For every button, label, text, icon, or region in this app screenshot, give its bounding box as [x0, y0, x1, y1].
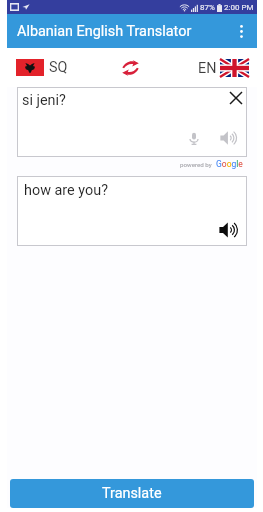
button[interactable]: Swap languages: [117, 55, 143, 81]
button[interactable]: Voice input: [183, 127, 205, 149]
staticText: powered by: [180, 161, 212, 168]
staticText: Translate: [102, 485, 162, 502]
staticText: Albanian English Translator: [17, 23, 192, 40]
button[interactable]: EN: [198, 59, 249, 77]
button[interactable]: Listen to translation: [217, 218, 241, 242]
staticText: si jeni?: [22, 92, 66, 109]
button[interactable]: Clear text: [225, 87, 247, 109]
button[interactable]: SQ: [16, 59, 68, 76]
button[interactable]: Listen: [218, 127, 240, 149]
staticText: how are you?: [24, 182, 108, 199]
staticText: 2:00 PM: [224, 3, 254, 12]
button[interactable]: More options: [229, 19, 253, 43]
staticText: EN: [198, 60, 217, 77]
staticText: Google: [216, 159, 243, 169]
staticText: 87%: [200, 3, 215, 12]
button[interactable]: Translate: [10, 479, 254, 508]
staticText: SQ: [49, 59, 68, 76]
